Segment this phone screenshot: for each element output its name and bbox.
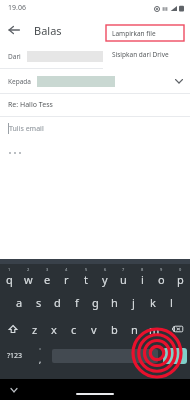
button[interactable]: v: [84, 316, 104, 342]
staticText: f: [75, 295, 79, 310]
staticText: Dari: [8, 52, 21, 61]
button[interactable]: 0: [171, 264, 190, 289]
staticText: 6: [104, 267, 107, 272]
button[interactable]: s: [29, 289, 48, 316]
button[interactable]: n: [124, 316, 144, 342]
staticText: q: [6, 272, 13, 287]
staticText: Sisipkan dari Drive: [112, 50, 169, 59]
staticText: ,: [39, 354, 42, 365]
staticText: p: [177, 272, 184, 287]
staticText: o: [158, 272, 165, 287]
button[interactable]: l: [162, 289, 181, 316]
button[interactable]: Shift: [0, 316, 25, 342]
button[interactable]: Enter: [163, 348, 187, 364]
staticText: i: [141, 272, 144, 287]
staticText: x: [51, 322, 57, 337]
button[interactable]: Kepada: [0, 69, 190, 93]
button[interactable]: Re: Hallo Tess: [0, 94, 190, 116]
button[interactable]: 7: [114, 264, 133, 289]
staticText: 9: [160, 267, 163, 272]
staticText: ?123: [7, 351, 23, 361]
button[interactable]: 5: [76, 264, 95, 289]
button[interactable]: Tulis email: [0, 117, 190, 139]
staticText: 19.06: [8, 3, 26, 13]
button[interactable]: m: [144, 316, 164, 342]
button[interactable]: b: [104, 316, 124, 342]
button[interactable]: More options: [8, 147, 24, 159]
staticText: Lampirkan file: [112, 29, 156, 38]
staticText: b: [111, 322, 118, 337]
button[interactable]: 2: [19, 264, 38, 289]
button[interactable]: 6: [95, 264, 114, 289]
button[interactable]: d: [48, 289, 67, 316]
button[interactable]: ?123: [0, 345, 30, 367]
staticText: Kepada: [8, 77, 31, 86]
staticText: k: [150, 295, 156, 310]
staticText: j: [132, 295, 135, 310]
staticText: d: [54, 295, 61, 310]
staticText: Balas: [34, 23, 62, 38]
staticText: t: [84, 272, 88, 287]
staticText: 3: [46, 267, 49, 272]
button[interactable]: Backspace: [164, 316, 190, 342]
staticText: y: [102, 272, 108, 287]
staticText: c: [71, 322, 77, 337]
button[interactable]: a: [9, 289, 29, 316]
button[interactable]: °: [30, 345, 50, 367]
staticText: v: [91, 322, 97, 337]
staticText: °: [39, 347, 42, 354]
button[interactable]: 3: [38, 264, 57, 289]
staticText: 2: [27, 267, 30, 272]
staticText: u: [120, 272, 127, 287]
staticText: 7: [122, 267, 125, 272]
staticText: h: [111, 295, 118, 310]
button[interactable]: 9: [152, 264, 171, 289]
button[interactable]: x: [44, 316, 64, 342]
staticText: n: [131, 322, 138, 337]
staticText: w: [24, 272, 33, 287]
button[interactable]: j: [124, 289, 143, 316]
button[interactable]: Hide keyboard: [8, 384, 20, 396]
button[interactable]: 1: [0, 264, 19, 289]
staticText: l: [170, 295, 173, 310]
staticText: s: [36, 295, 42, 310]
button[interactable]: f: [67, 289, 86, 316]
staticText: 8: [141, 267, 144, 272]
button[interactable]: Back: [0, 16, 28, 44]
button[interactable]: g: [86, 289, 105, 316]
button[interactable]: Lampirkan file: [106, 25, 184, 41]
button[interactable]: 8: [133, 264, 152, 289]
staticText: 1: [8, 267, 11, 272]
staticText: a: [16, 295, 23, 310]
button[interactable]: k: [143, 289, 162, 316]
staticText: r: [64, 272, 69, 287]
staticText: 0: [179, 267, 182, 272]
staticText: z: [32, 322, 38, 337]
button[interactable]: Dari: [0, 44, 190, 68]
staticText: e: [44, 272, 51, 287]
button[interactable]: Sisipkan dari Drive: [103, 46, 190, 62]
staticText: Re: Hallo Tess: [8, 100, 53, 110]
staticText: m: [149, 322, 160, 337]
button[interactable]: c: [64, 316, 84, 342]
staticText: g: [92, 295, 99, 310]
button[interactable]: h: [105, 289, 124, 316]
staticText: 5: [85, 267, 88, 272]
button[interactable]: Space: [52, 349, 158, 363]
staticText: Tulis email: [9, 124, 44, 134]
staticText: 4: [65, 267, 68, 272]
button[interactable]: z: [25, 316, 44, 342]
button[interactable]: 4: [57, 264, 76, 289]
